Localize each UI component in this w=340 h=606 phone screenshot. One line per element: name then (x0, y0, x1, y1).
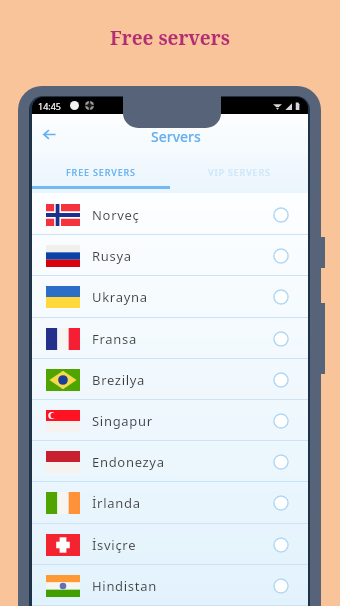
staticText: Fransa (92, 330, 137, 348)
staticText: Hindistan (92, 577, 157, 595)
button[interactable]: VIP SERVERS (170, 153, 308, 193)
staticText: Free servers (110, 25, 230, 51)
button[interactable]: Back (37, 122, 61, 146)
button[interactable]: Endonezya (32, 440, 308, 481)
staticText: İsviçre (92, 536, 137, 554)
staticText: 14:45 (38, 100, 62, 112)
staticText: Singapur (92, 412, 153, 430)
button[interactable]: Brezilya (32, 358, 308, 399)
button[interactable]: Fransa (32, 317, 308, 358)
staticText: VIP SERVERS (208, 166, 271, 178)
staticText: İrlanda (92, 494, 141, 512)
staticText: Norveç (92, 206, 140, 224)
staticText: Brezilya (92, 371, 146, 389)
button[interactable]: Ukrayna (32, 275, 308, 316)
staticText: Rusya (92, 247, 132, 265)
staticText: Servers (151, 127, 201, 146)
staticText: Ukrayna (92, 288, 148, 306)
staticText: Endonezya (92, 453, 165, 471)
button[interactable]: Rusya (32, 234, 308, 275)
button[interactable]: Norveç (32, 193, 308, 234)
staticText: FREE SERVERS (66, 166, 136, 178)
button[interactable]: FREE SERVERS (32, 153, 170, 193)
button[interactable]: Hindistan (32, 564, 308, 605)
button[interactable]: İsviçre (32, 523, 308, 564)
button[interactable]: İrlanda (32, 481, 308, 522)
button[interactable]: Singapur (32, 399, 308, 440)
